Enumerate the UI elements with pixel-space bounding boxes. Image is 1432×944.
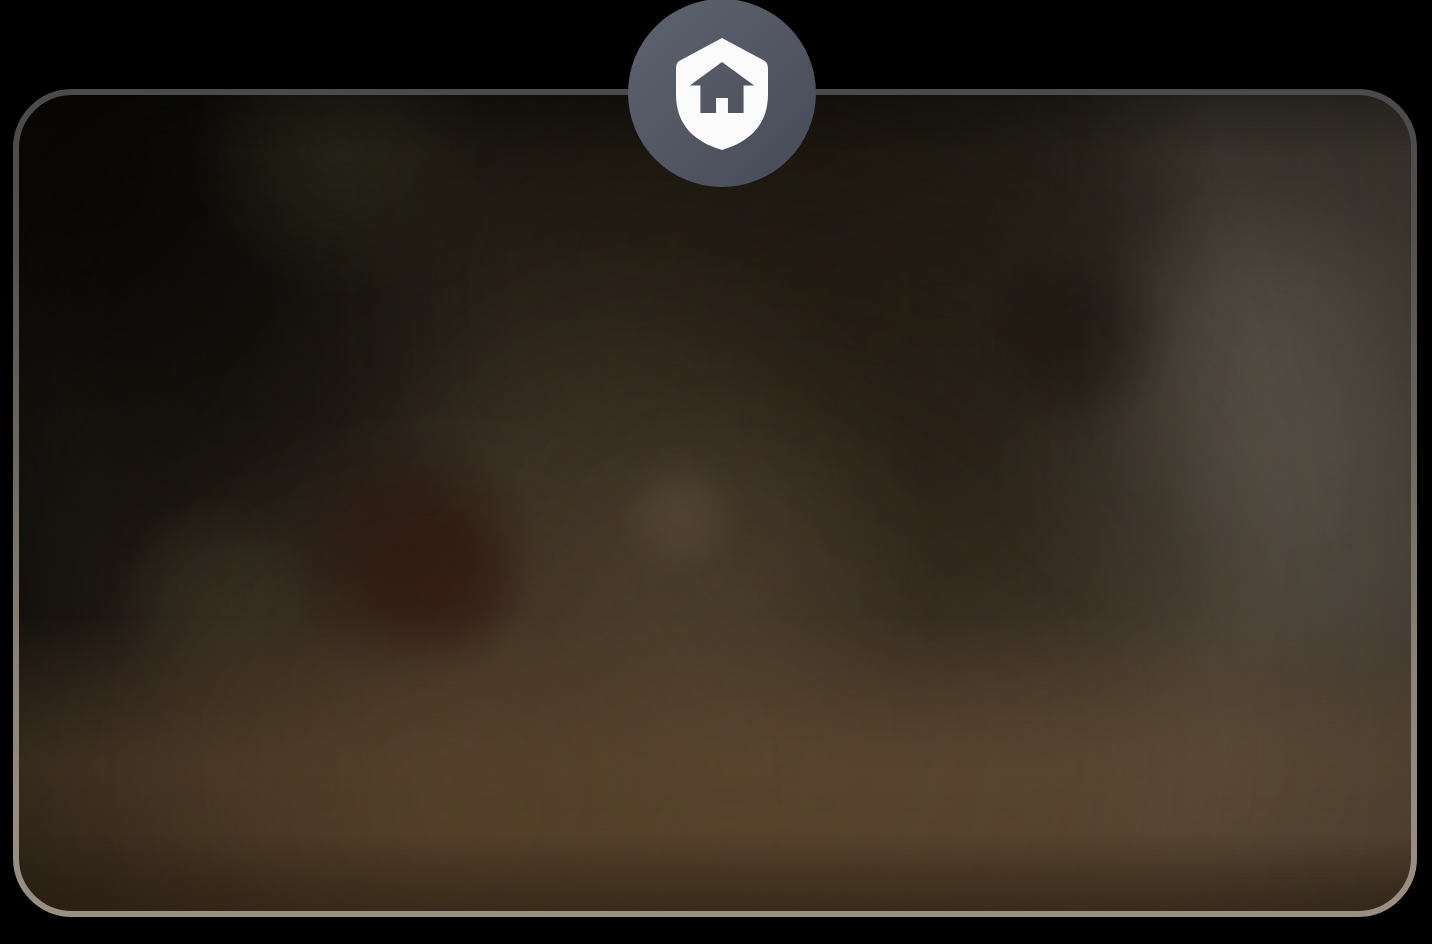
button[interactable]: Home security camera status <box>0 0 1432 944</box>
